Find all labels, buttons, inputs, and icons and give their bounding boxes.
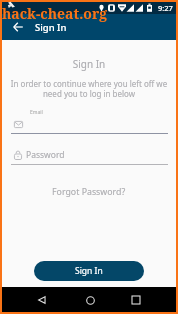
- staticText: Email: [30, 109, 43, 116]
- staticText: hack-cheat.org: [2, 4, 108, 23]
- staticText: Password: [26, 149, 65, 161]
- button[interactable]: Back: [33, 291, 51, 309]
- staticText: Sign In: [2, 57, 176, 71]
- staticText: Sign In: [75, 265, 103, 277]
- staticText: 9:27: [158, 3, 173, 13]
- staticText: Sign In: [35, 21, 67, 34]
- button[interactable]: Back: [10, 19, 26, 35]
- staticText: Forgot Password?: [52, 186, 126, 198]
- button[interactable]: Recent apps: [127, 291, 145, 309]
- staticText: In order to continue where you left off …: [9, 78, 169, 100]
- button[interactable]: Forgot Password?: [46, 184, 132, 200]
- button[interactable]: Sign In: [34, 261, 144, 281]
- button[interactable]: Home: [81, 291, 99, 309]
